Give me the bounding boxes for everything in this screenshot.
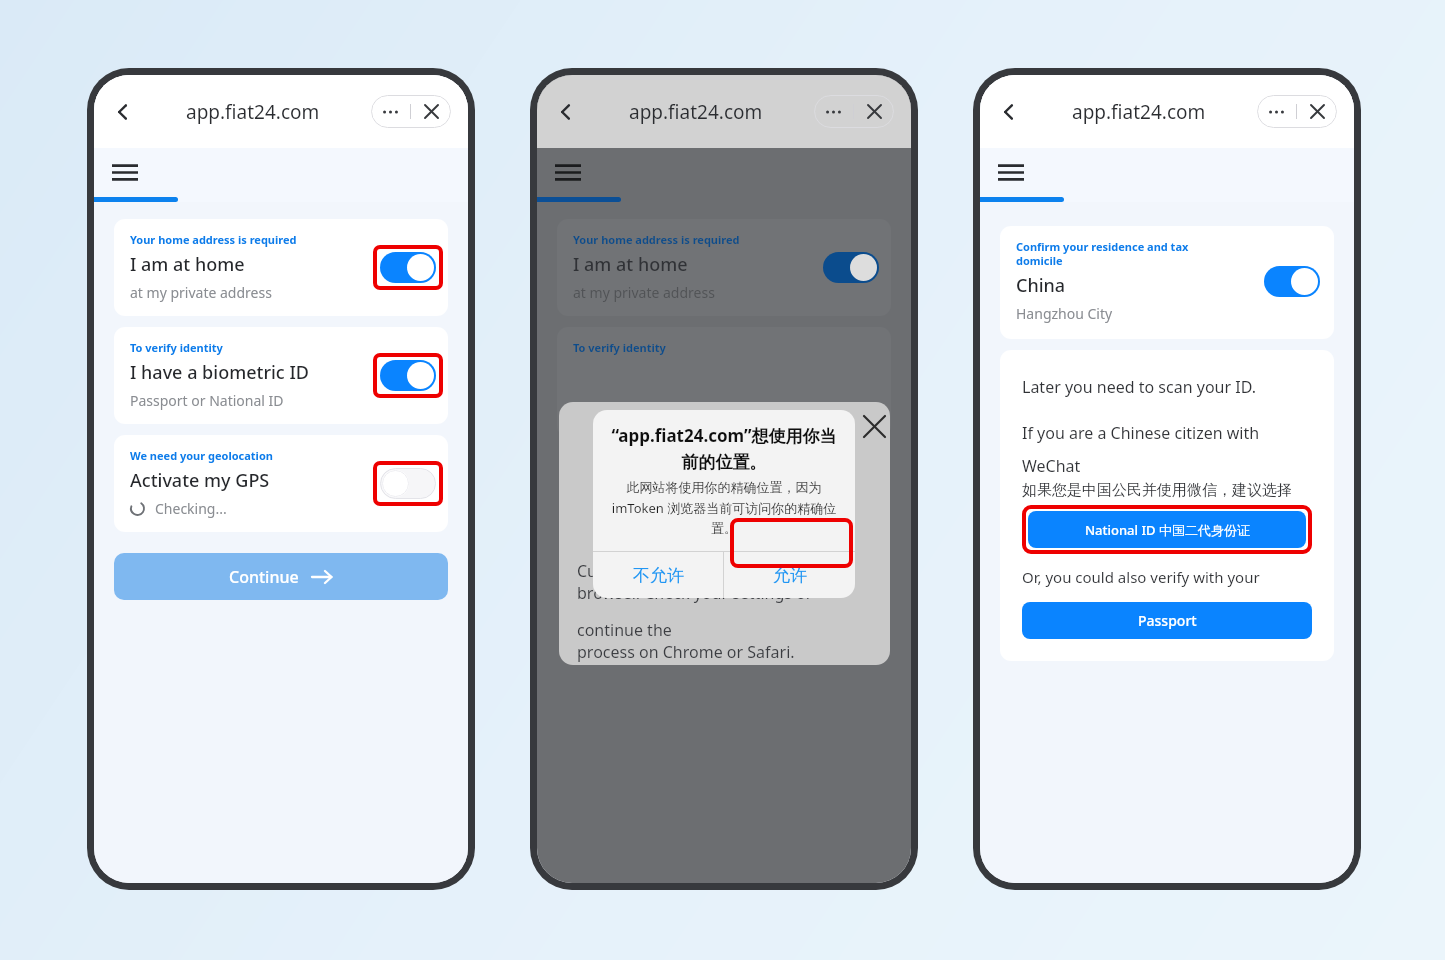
- staticText: Your home address is required: [573, 232, 740, 247]
- staticText: browser. Check your settings or continue…: [577, 582, 872, 641]
- staticText: Confirm your residence and tax domicile: [1016, 239, 1189, 268]
- button[interactable]: Passport: [1022, 602, 1312, 639]
- button[interactable]: National ID 中国二代身份证: [1028, 511, 1306, 548]
- staticText: National ID 中国二代身份证: [1085, 521, 1250, 539]
- staticText: China: [1016, 273, 1066, 298]
- staticText: process on Chrome or Safari.: [577, 641, 795, 663]
- staticText: Hangzhou City: [1016, 304, 1113, 323]
- button[interactable]: Close: [1297, 95, 1337, 128]
- staticText: 不允许: [633, 565, 684, 586]
- button[interactable]: Confirm your residence and tax domicile: [1000, 226, 1334, 339]
- button[interactable]: Back: [997, 100, 1021, 124]
- button[interactable]: To verify identity: [114, 327, 448, 424]
- button[interactable]: More options: [371, 95, 410, 128]
- button[interactable]: More options: [1257, 95, 1296, 128]
- button[interactable]: Switch on: [380, 360, 436, 391]
- button[interactable]: Switch on: [380, 252, 436, 283]
- staticText: Cu…: [577, 560, 610, 582]
- button[interactable]: Your home address is required: [557, 219, 891, 316]
- staticText: I have a biometric ID: [130, 360, 309, 385]
- button[interactable]: Menu: [555, 164, 581, 181]
- staticText: app.fiat24.com: [1072, 99, 1206, 125]
- button[interactable]: 允许: [724, 552, 855, 598]
- button[interactable]: Menu: [112, 164, 138, 181]
- staticText: Continue: [229, 566, 299, 588]
- button[interactable]: Menu: [998, 164, 1024, 181]
- button[interactable]: Switch off: [380, 468, 436, 499]
- staticText: at my private address: [130, 283, 272, 302]
- button[interactable]: Your home address is required: [114, 219, 448, 316]
- staticText: Later you need to scan your ID.: [1022, 376, 1256, 398]
- button[interactable]: Switch on: [1264, 266, 1320, 297]
- staticText: I am at home: [573, 252, 688, 277]
- staticText: Activate my GPS: [130, 468, 270, 493]
- staticText: We need your geolocation: [130, 448, 273, 463]
- button[interactable]: Close: [854, 95, 894, 128]
- button[interactable]: Back: [111, 100, 135, 124]
- button[interactable]: More options: [814, 95, 853, 128]
- staticText: To verify identity: [130, 340, 223, 355]
- staticText: at my private address: [573, 283, 715, 302]
- button[interactable]: 不允许: [593, 552, 723, 598]
- staticText: 允许: [773, 565, 807, 586]
- staticText: Checking...: [155, 499, 227, 518]
- staticText: app.fiat24.com: [629, 99, 763, 125]
- button[interactable]: Switch on: [823, 252, 879, 283]
- button[interactable]: We need your geolocation: [114, 435, 448, 532]
- staticText: 如果您是中国公民并使用微信，建议选择: [1022, 481, 1292, 500]
- staticText: To verify identity: [573, 340, 666, 355]
- button[interactable]: Back: [554, 100, 578, 124]
- staticText: “app.fiat24.com”想使用你当前的位置。: [606, 424, 842, 473]
- staticText: I am at home: [130, 252, 245, 277]
- button[interactable]: Close dialog: [860, 412, 888, 440]
- staticText: 此网站将使用你的精确位置，因为 imToken 浏览器当前可访问你的精确位置。: [606, 478, 842, 537]
- button[interactable]: Continue: [114, 553, 448, 600]
- staticText: Your home address is required: [130, 232, 297, 247]
- staticText: Or, you could also verify with your: [1022, 567, 1260, 587]
- staticText: Passport: [1138, 611, 1197, 630]
- staticText: Passport or National ID: [130, 391, 284, 410]
- button[interactable]: Close: [411, 95, 451, 128]
- staticText: If you are a Chinese citizen with WeChat: [1022, 422, 1260, 477]
- staticText: app.fiat24.com: [186, 99, 320, 125]
